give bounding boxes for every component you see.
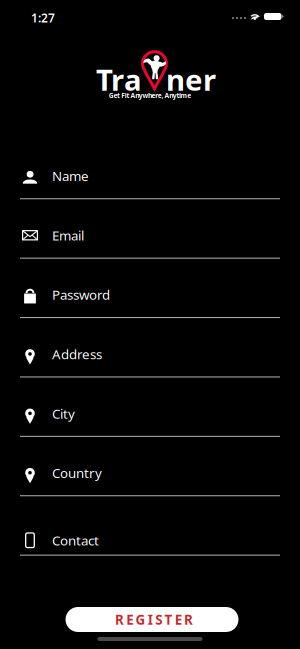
button[interactable]: Name: [0, 140, 300, 199]
staticText: 1:27: [31, 10, 55, 26]
button[interactable]: Country: [0, 437, 300, 496]
button[interactable]: Address: [0, 318, 300, 377]
staticText: Address: [52, 345, 102, 363]
staticText: Name: [52, 167, 89, 185]
staticText: ner: [166, 60, 216, 99]
staticText: Get Fit Anywhere, Anytime: [109, 91, 191, 100]
staticText: Country: [52, 464, 102, 482]
staticText: Email: [52, 226, 84, 244]
staticText: REGISTER: [115, 611, 193, 628]
button[interactable]: Email: [0, 199, 300, 259]
button[interactable]: REGISTER: [65, 607, 238, 632]
staticText: Contact: [52, 531, 99, 549]
button[interactable]: Password: [0, 259, 300, 318]
staticText: City: [52, 405, 75, 422]
staticText: Password: [52, 286, 110, 303]
staticText: Tra: [96, 60, 142, 99]
button[interactable]: Contact: [0, 496, 300, 556]
button[interactable]: City: [0, 377, 300, 437]
